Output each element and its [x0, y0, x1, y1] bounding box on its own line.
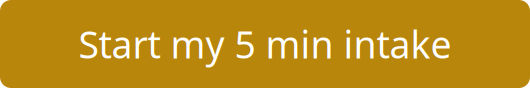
- staticText: Start my 5 min intake: [78, 19, 451, 69]
- button[interactable]: Start my 5 min intake: [0, 0, 530, 88]
